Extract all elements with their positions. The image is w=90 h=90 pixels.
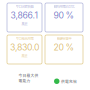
staticText: 3,830.0 xyxy=(10,42,39,53)
staticText: 90 % xyxy=(53,10,74,21)
staticText: 萬瓩 xyxy=(21,22,27,26)
staticText: 今日尖峰負載 xyxy=(15,4,33,9)
staticText: 今日最大供電能力 xyxy=(18,73,38,83)
staticText: 萬瓩 xyxy=(21,54,27,58)
staticText: 備轉容量率 xyxy=(56,36,71,41)
staticText: 今日最高用電 xyxy=(15,36,33,41)
button[interactable]: 今日尖峰負載 xyxy=(7,3,42,32)
button[interactable]: 備轉容量率 xyxy=(45,35,83,64)
button[interactable]: 瞬時用電百分比 xyxy=(45,3,83,32)
staticText: 3,866.1 xyxy=(10,10,38,21)
staticText: 20 % xyxy=(53,42,74,53)
button[interactable]: 今日最高用電 xyxy=(7,35,42,64)
staticText: 瞬時用電百分比 xyxy=(53,4,74,9)
staticText: 供電充裕 xyxy=(61,78,77,84)
button[interactable]: 供電充裕 xyxy=(54,72,77,84)
